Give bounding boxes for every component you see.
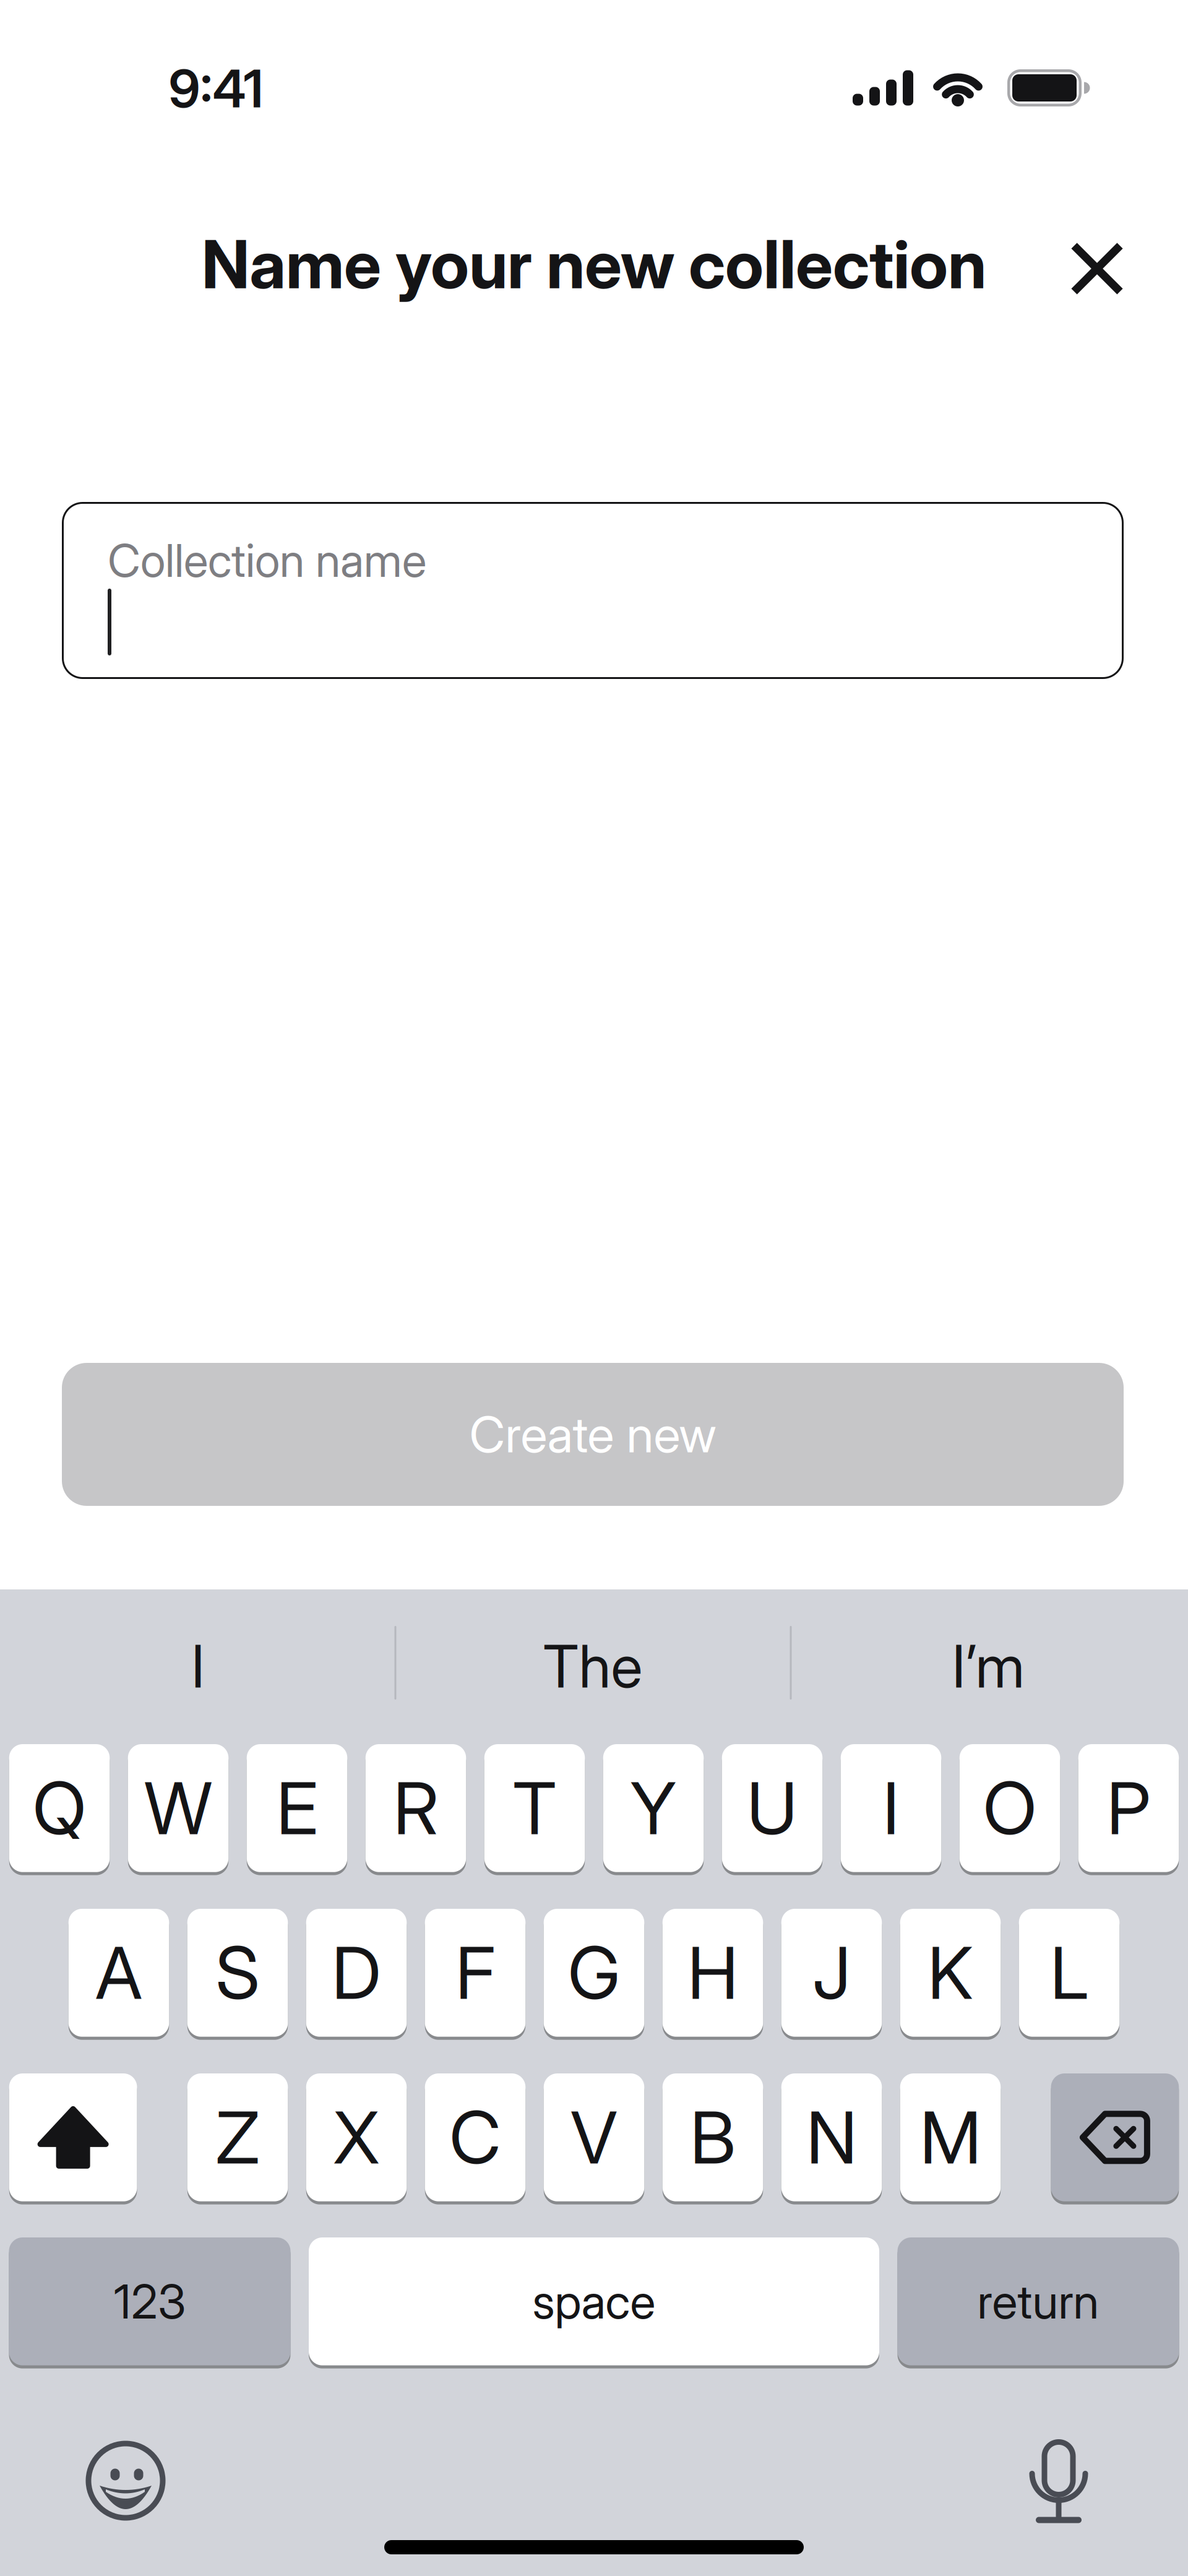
- button[interactable]: F: [425, 1909, 526, 2037]
- staticText: V: [570, 2095, 618, 2180]
- button[interactable]: O: [960, 1744, 1060, 1872]
- staticText: 9:41: [169, 58, 263, 119]
- button[interactable]: Emoji: [85, 2440, 166, 2522]
- staticText: K: [928, 1930, 973, 2015]
- button[interactable]: B: [663, 2073, 763, 2201]
- button[interactable]: Y: [603, 1744, 704, 1872]
- button[interactable]: X: [306, 2073, 407, 2201]
- staticText: A: [95, 1930, 142, 2015]
- staticText: Q: [32, 1766, 86, 1850]
- staticText: The: [543, 1632, 643, 1701]
- button[interactable]: C: [425, 2073, 526, 2201]
- staticText: R: [393, 1766, 438, 1850]
- staticText: E: [276, 1766, 318, 1850]
- staticText: Y: [630, 1766, 677, 1850]
- button[interactable]: Close: [1074, 246, 1120, 292]
- button[interactable]: Z: [187, 2073, 288, 2201]
- staticText: I: [883, 1766, 899, 1850]
- staticText: Create new: [469, 1405, 716, 1464]
- staticText: L: [1050, 1930, 1088, 2015]
- button[interactable]: Q: [9, 1744, 110, 1872]
- button[interactable]: space: [309, 2237, 879, 2365]
- button[interactable]: Dictation: [1021, 2435, 1096, 2523]
- staticText: W: [144, 1766, 212, 1850]
- staticText: return: [977, 2274, 1099, 2329]
- button[interactable]: M: [900, 2073, 1001, 2201]
- staticText: P: [1107, 1766, 1151, 1850]
- button[interactable]: P: [1078, 1744, 1179, 1872]
- button[interactable]: I: [841, 1744, 941, 1872]
- button[interactable]: S: [187, 1909, 288, 2037]
- button[interactable]: U: [722, 1744, 823, 1872]
- button[interactable]: D: [306, 1909, 407, 2037]
- button[interactable]: G: [544, 1909, 644, 2037]
- button[interactable]: N: [781, 2073, 882, 2201]
- staticText: N: [806, 2095, 857, 2180]
- button[interactable]: Delete: [1051, 2073, 1179, 2201]
- staticText: S: [216, 1930, 260, 2015]
- staticText: Collection name: [108, 534, 426, 587]
- button[interactable]: Collection name: [62, 502, 1124, 679]
- button[interactable]: Create new: [62, 1363, 1124, 1506]
- button[interactable]: W: [128, 1744, 229, 1872]
- button[interactable]: The: [407, 1601, 778, 1731]
- button[interactable]: J: [781, 1909, 882, 2037]
- staticText: U: [747, 1766, 798, 1850]
- button[interactable]: R: [366, 1744, 466, 1872]
- staticText: X: [333, 2095, 380, 2180]
- button[interactable]: T: [484, 1744, 585, 1872]
- staticText: T: [513, 1766, 557, 1850]
- button[interactable]: V: [544, 2073, 644, 2201]
- button[interactable]: Shift: [9, 2073, 137, 2201]
- staticText: Name your new collection: [202, 225, 986, 303]
- staticText: D: [332, 1930, 381, 2015]
- button[interactable]: I’m: [803, 1601, 1174, 1731]
- button[interactable]: I: [12, 1601, 384, 1731]
- button[interactable]: H: [663, 1909, 763, 2037]
- staticText: G: [568, 1930, 620, 2015]
- staticText: I: [191, 1632, 205, 1701]
- button[interactable]: A: [69, 1909, 169, 2037]
- staticText: F: [455, 1930, 495, 2015]
- staticText: space: [532, 2274, 656, 2329]
- staticText: 123: [114, 2274, 186, 2329]
- staticText: B: [690, 2095, 736, 2180]
- button[interactable]: return: [897, 2237, 1179, 2365]
- staticText: O: [983, 1766, 1037, 1850]
- staticText: Z: [216, 2095, 260, 2180]
- button[interactable]: 123: [9, 2237, 291, 2365]
- staticText: J: [812, 1930, 851, 2015]
- staticText: I’m: [952, 1632, 1024, 1701]
- staticText: C: [449, 2095, 501, 2180]
- button[interactable]: K: [900, 1909, 1001, 2037]
- button[interactable]: L: [1019, 1909, 1120, 2037]
- staticText: H: [687, 1930, 738, 2015]
- button[interactable]: E: [247, 1744, 347, 1872]
- staticText: M: [920, 2095, 981, 2180]
